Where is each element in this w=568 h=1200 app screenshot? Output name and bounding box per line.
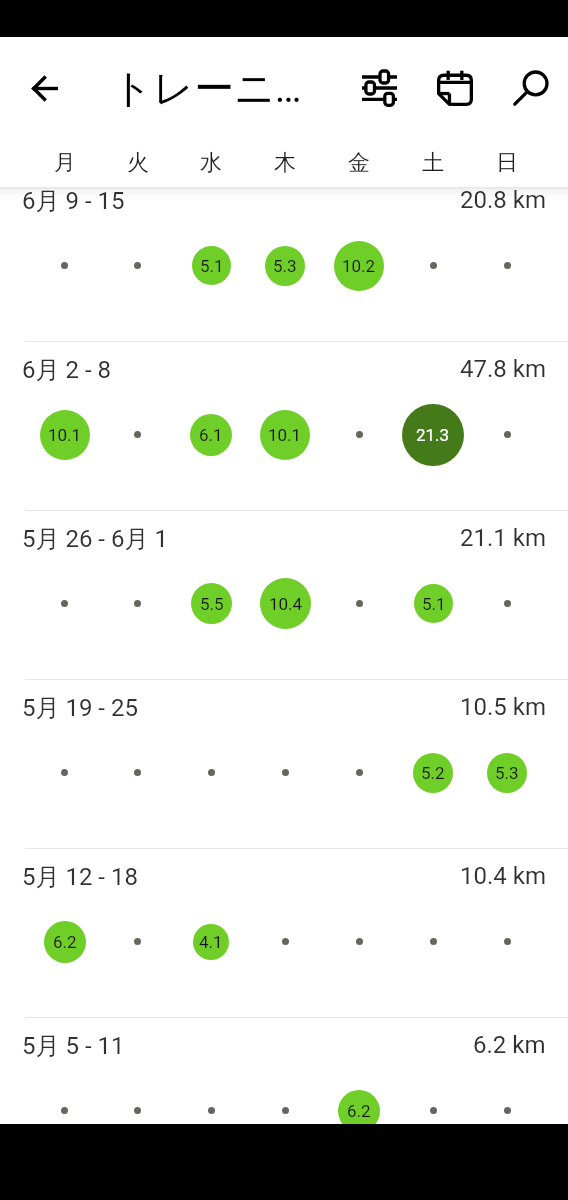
staticText: 金 bbox=[348, 149, 370, 177]
staticText: 6.2 km bbox=[473, 1031, 546, 1059]
staticText: 5月 12 - 18 bbox=[22, 862, 138, 892]
staticText: 47.8 km bbox=[460, 355, 546, 383]
staticText: 20.8 km bbox=[460, 187, 546, 214]
staticText: 日 bbox=[496, 149, 518, 177]
button[interactable]: 5月 5 - 11 bbox=[0, 1017, 568, 1124]
button[interactable]: Back bbox=[17, 37, 73, 139]
staticText: 4.1 bbox=[199, 932, 223, 952]
button[interactable]: 5月 12 - 18 bbox=[0, 848, 568, 1017]
staticText: 5.2 bbox=[421, 763, 445, 783]
staticText: 6月 9 - 15 bbox=[22, 187, 125, 216]
staticText: 5.1 bbox=[422, 594, 446, 614]
staticText: 5月 19 - 25 bbox=[22, 693, 138, 723]
staticText: 5月 26 - 6月 1 bbox=[22, 524, 168, 554]
staticText: 21.1 km bbox=[460, 524, 546, 552]
staticText: 10.1 bbox=[268, 425, 302, 445]
staticText: トレーニ… bbox=[112, 63, 302, 113]
staticText: 月 bbox=[54, 149, 76, 177]
staticText: 5.5 bbox=[200, 594, 224, 614]
button[interactable]: 6月 9 - 15 bbox=[0, 187, 568, 341]
staticText: 6月 2 - 8 bbox=[22, 355, 111, 385]
staticText: 木 bbox=[274, 149, 296, 177]
staticText: 火 bbox=[127, 149, 149, 177]
staticText: 水 bbox=[200, 149, 222, 177]
staticText: 10.1 bbox=[48, 425, 82, 445]
button[interactable]: 6月 2 - 8 bbox=[0, 341, 568, 510]
staticText: 5.3 bbox=[273, 256, 297, 276]
staticText: 10.4 km bbox=[460, 862, 546, 890]
staticText: 6.2 bbox=[347, 1101, 371, 1121]
staticText: 10.4 bbox=[269, 594, 303, 614]
staticText: 5.1 bbox=[200, 256, 224, 276]
staticText: 6.1 bbox=[199, 425, 223, 445]
staticText: 6.2 bbox=[53, 932, 77, 952]
staticText: 土 bbox=[422, 149, 444, 177]
staticText: 5.3 bbox=[495, 763, 519, 783]
button[interactable]: Search bbox=[502, 37, 560, 139]
button[interactable]: Calendar bbox=[426, 37, 484, 139]
button[interactable]: Filter bbox=[350, 37, 408, 139]
staticText: 5月 5 - 11 bbox=[22, 1031, 125, 1061]
staticText: 21.3 bbox=[416, 425, 450, 445]
button[interactable]: 5月 26 - 6月 1 bbox=[0, 510, 568, 679]
staticText: 10.2 bbox=[342, 256, 376, 276]
button[interactable]: 5月 19 - 25 bbox=[0, 679, 568, 848]
staticText: 10.5 km bbox=[460, 693, 546, 721]
